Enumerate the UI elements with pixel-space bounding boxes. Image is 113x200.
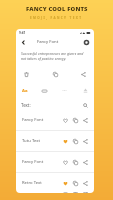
staticText: EMOJI, FANCY TEXT	[30, 16, 83, 20]
button[interactable]: Favorite	[60, 115, 70, 125]
staticText: FANCY COOL FONTS	[26, 5, 88, 13]
button[interactable]: Copy	[70, 157, 80, 167]
button[interactable]: Back	[19, 38, 27, 46]
button[interactable]: Save	[80, 86, 90, 95]
button[interactable]: Share	[80, 178, 90, 188]
staticText: Fancy Font	[37, 39, 59, 45]
button[interactable]: Tutu Text	[16, 131, 94, 151]
staticText: Fancy Font	[22, 159, 44, 165]
button[interactable]: Copy	[70, 178, 80, 188]
button[interactable]: More	[59, 86, 69, 95]
staticText: Retro Text	[22, 180, 42, 186]
button[interactable]: Share	[80, 115, 90, 125]
button[interactable]: Favorite	[60, 136, 70, 146]
button[interactable]: Favorite	[60, 178, 70, 188]
button[interactable]: Copy	[70, 136, 80, 146]
staticText: Tutu Text	[22, 138, 40, 144]
button[interactable]: Font size	[20, 86, 30, 95]
button[interactable]: Copy	[70, 115, 80, 125]
staticText: Fancy Font	[22, 117, 44, 123]
staticText: Aa	[22, 88, 28, 94]
button[interactable]: Search	[80, 100, 90, 110]
button[interactable]: Fancy Font	[16, 110, 94, 130]
button[interactable]: Copy	[50, 69, 61, 80]
button[interactable]: Retro Text	[16, 173, 94, 193]
button[interactable]: Delete	[21, 69, 32, 80]
staticText: Text:	[21, 102, 31, 108]
staticText: Successful entrepreneurs are givers and …	[21, 51, 84, 61]
button[interactable]: Share	[80, 136, 90, 146]
staticText: 9:41	[19, 31, 26, 35]
button[interactable]: Favorite	[60, 157, 70, 167]
button[interactable]: Keyboard	[39, 86, 49, 95]
button[interactable]: Share	[80, 157, 90, 167]
button[interactable]: Share	[78, 69, 89, 80]
button[interactable]: Fancy Font	[16, 152, 94, 172]
button[interactable]: Settings	[82, 38, 90, 46]
